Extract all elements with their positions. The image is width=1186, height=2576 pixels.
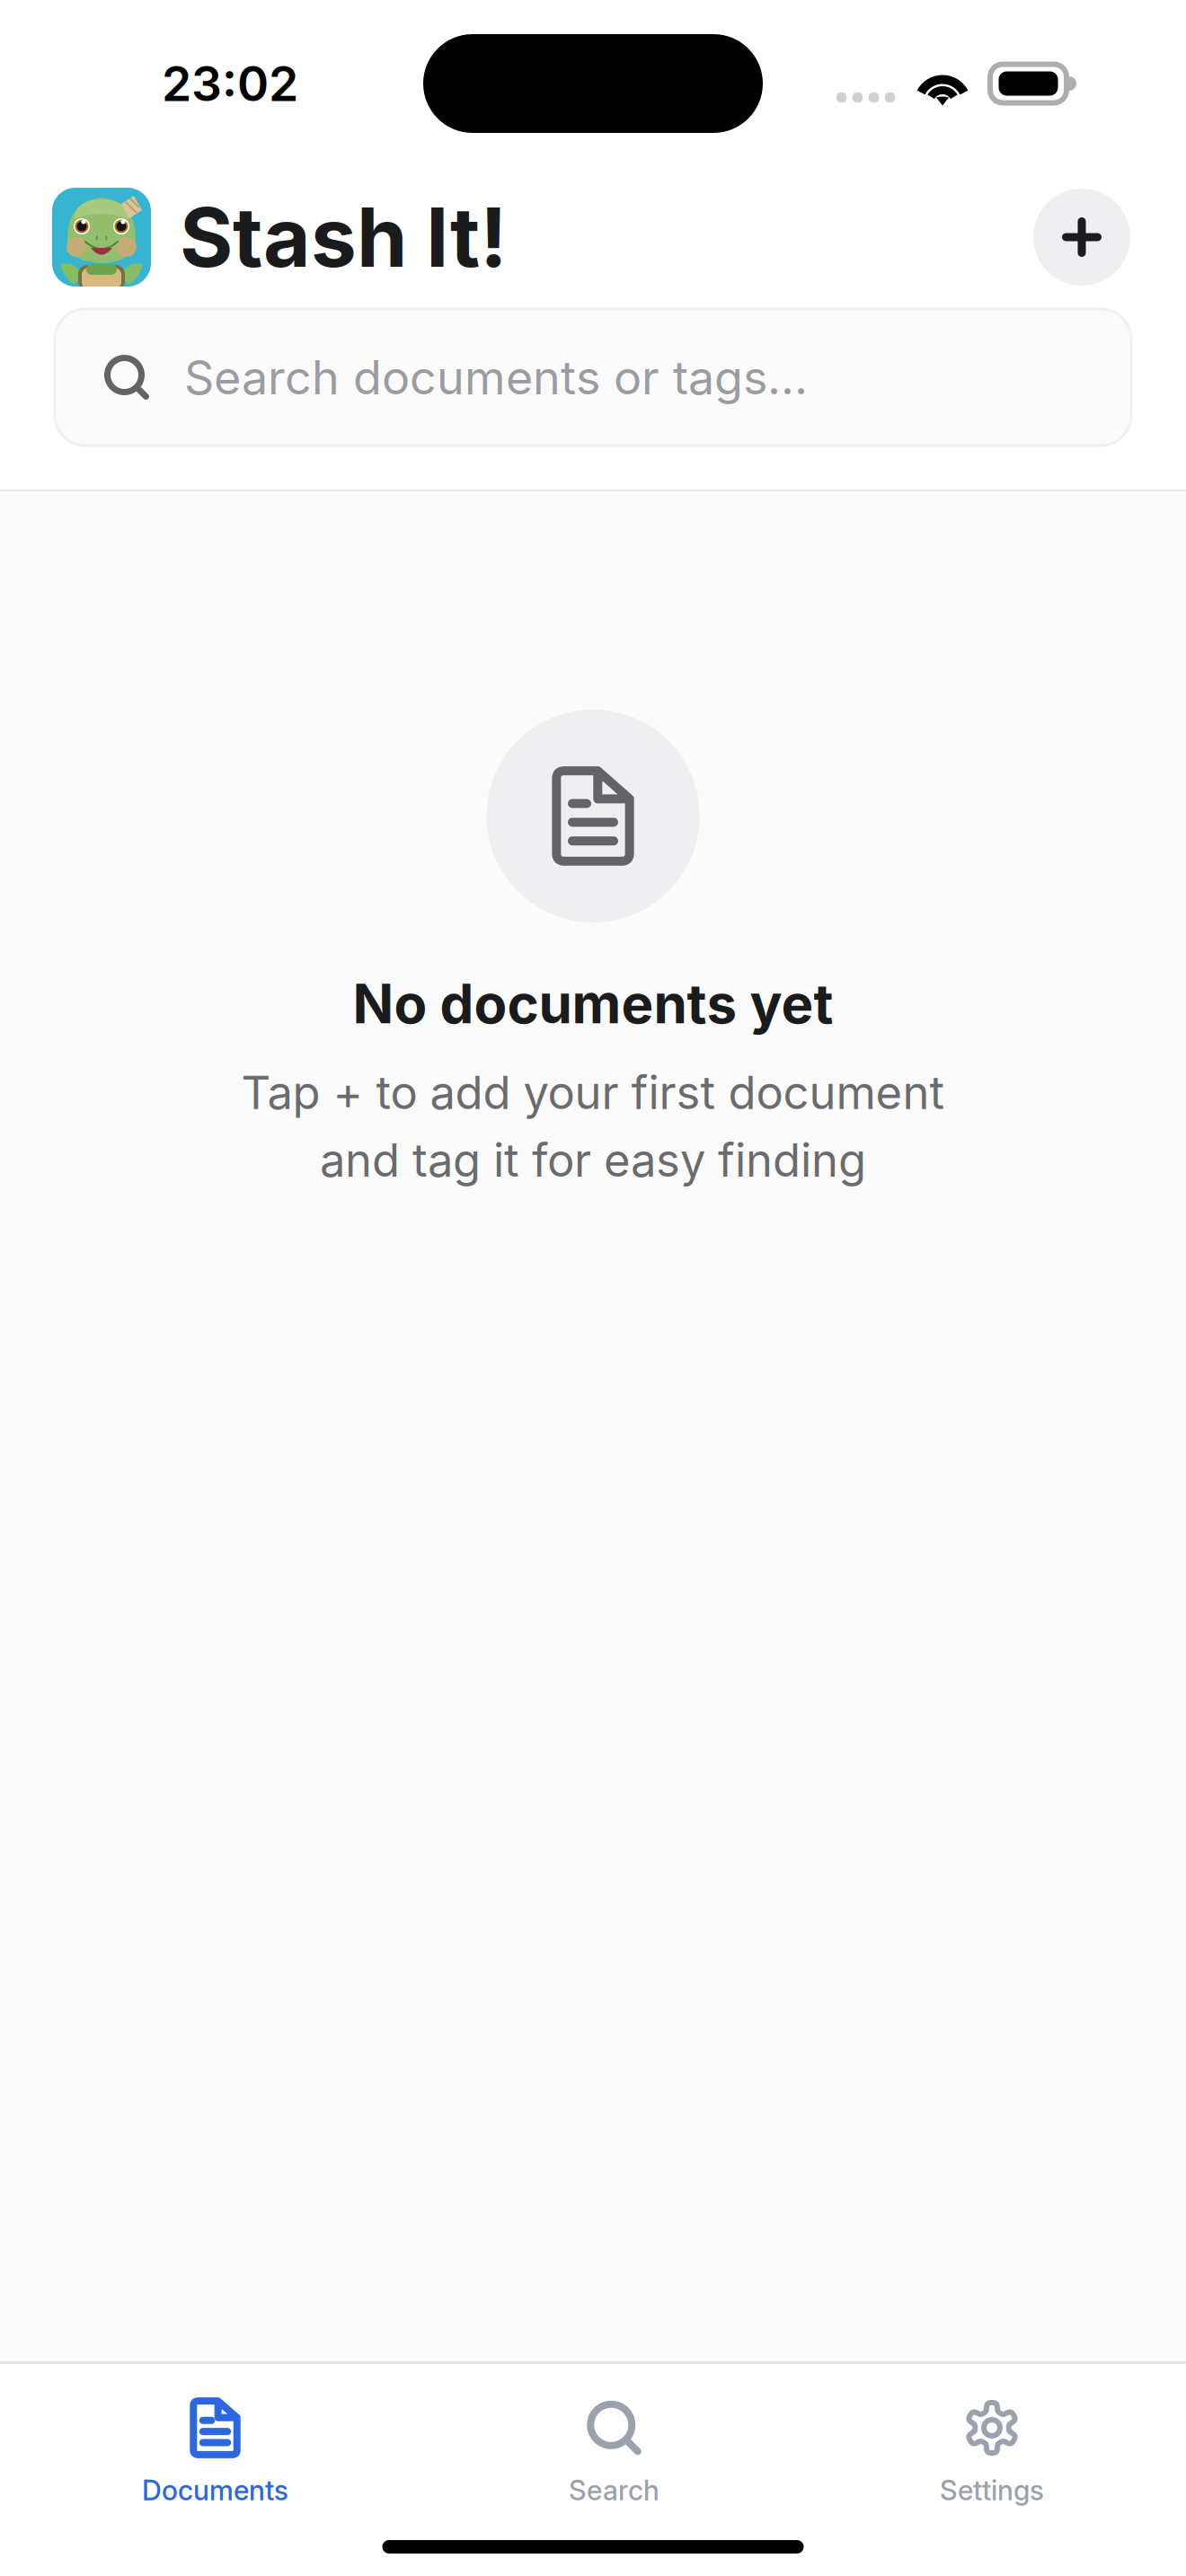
button[interactable]: Add document [1033,189,1130,286]
staticText: and tag it for easy finding [320,1133,866,1188]
staticText: No documents yet [353,971,833,1036]
staticText: Stash It! [180,188,508,286]
staticText: Settings [940,2474,1044,2507]
button[interactable]: Search [569,2397,659,2507]
staticText: Search documents or tags... [184,349,808,405]
button[interactable]: Search documents or tags... [55,309,1131,446]
staticText: Tap + to add your first document [241,1065,945,1120]
button[interactable]: Documents [142,2397,288,2507]
staticText: 23:02 [162,55,298,112]
staticText: Documents [142,2474,288,2507]
staticText: Search [569,2474,659,2507]
button[interactable]: Settings [940,2397,1044,2507]
